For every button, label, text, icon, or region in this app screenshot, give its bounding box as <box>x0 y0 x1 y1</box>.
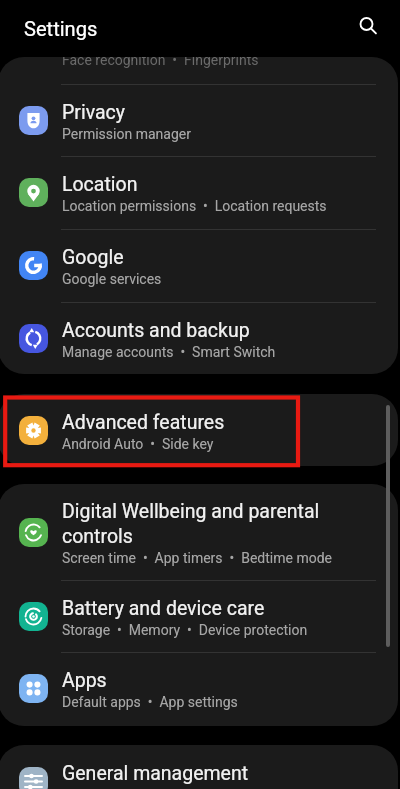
button[interactable]: Search <box>349 8 389 48</box>
staticText: Permission manager <box>62 126 191 142</box>
button[interactable]: Accounts and backup <box>0 302 398 374</box>
staticText: Digital Wellbeing and parental controls <box>62 500 352 548</box>
staticText: Default apps • App settings <box>62 694 238 710</box>
button[interactable]: Advanced features <box>0 394 398 466</box>
button[interactable]: Location <box>0 156 398 228</box>
button[interactable]: Google <box>0 229 398 301</box>
staticText: Google services <box>62 271 162 287</box>
button[interactable]: Biometrics and security <box>0 57 398 82</box>
staticText: Accounts and backup <box>62 319 250 342</box>
button[interactable]: Privacy <box>0 84 398 156</box>
button[interactable]: Apps <box>0 652 398 724</box>
staticText: Android Auto • Side key <box>62 436 214 452</box>
staticText: Battery and device care <box>62 597 265 620</box>
button[interactable]: General management <box>0 745 398 789</box>
staticText: Face recognition • Fingerprints <box>62 57 259 68</box>
staticText: General management <box>62 762 249 785</box>
button[interactable]: Battery and device care <box>0 580 398 652</box>
button[interactable]: Digital Wellbeing and parental controls <box>0 484 398 580</box>
staticText: Apps <box>62 669 107 692</box>
staticText: Screen time • App timers • Bedtime mode <box>62 550 332 566</box>
staticText: Settings <box>24 17 98 41</box>
staticText: Storage • Memory • Device protection <box>62 622 308 638</box>
staticText: Location <box>62 173 138 196</box>
staticText: Manage accounts • Smart Switch <box>62 344 276 360</box>
staticText: Advanced features <box>62 411 225 434</box>
staticText: Privacy <box>62 101 125 124</box>
staticText: Location permissions • Location requests <box>62 198 327 214</box>
staticText: Google <box>62 246 124 269</box>
